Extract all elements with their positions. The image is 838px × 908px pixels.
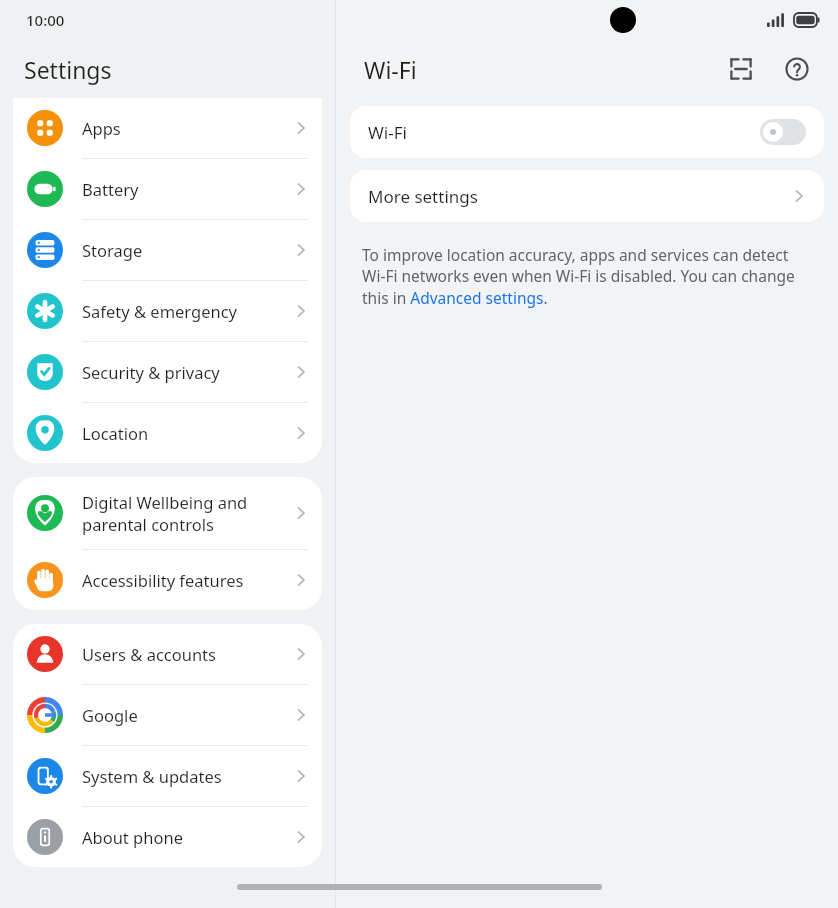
staticText: About phone [82,826,183,848]
button[interactable]: Users & accounts [13,624,322,684]
staticText: Wi-Fi [368,121,760,144]
staticText: Security & privacy [82,361,220,383]
button[interactable]: Safety & emergency [13,281,322,341]
staticText: Safety & emergency [82,300,238,322]
button[interactable]: Apps [13,98,322,158]
button[interactable]: Wi-Fi toggle [760,119,806,145]
staticText: Storage [82,239,143,261]
staticText: Battery [82,178,139,200]
button[interactable]: Battery [13,159,322,219]
button[interactable]: Google [13,685,322,745]
staticText: Apps [82,117,121,139]
button[interactable]: Digital Wellbeing and [13,477,322,549]
button[interactable]: System & updates [13,746,322,806]
staticText: System & updates [82,765,222,787]
button[interactable]: Wi-Fi [350,106,824,158]
staticText: Digital Wellbeing and [82,491,248,513]
staticText: Users & accounts [82,643,216,665]
staticText: More settings [368,185,790,208]
button[interactable]: Location [13,403,322,463]
button[interactable]: Scan QR code [718,46,764,92]
staticText: Google [82,704,138,726]
staticText: 10:00 [26,10,65,30]
staticText: parental controls [82,513,214,535]
button[interactable]: Accessibility features [13,550,322,610]
button[interactable]: More settings [350,170,824,222]
staticText: Settings [24,54,112,85]
button[interactable]: Storage [13,220,322,280]
staticText: Location [82,422,149,444]
staticText: Wi-Fi [364,54,718,85]
button[interactable]: Security & privacy [13,342,322,402]
staticText: To improve location accuracy, apps and s… [362,244,812,309]
staticText: Accessibility features [82,569,244,591]
button[interactable]: About phone [13,807,322,867]
button[interactable]: Help [774,46,820,92]
